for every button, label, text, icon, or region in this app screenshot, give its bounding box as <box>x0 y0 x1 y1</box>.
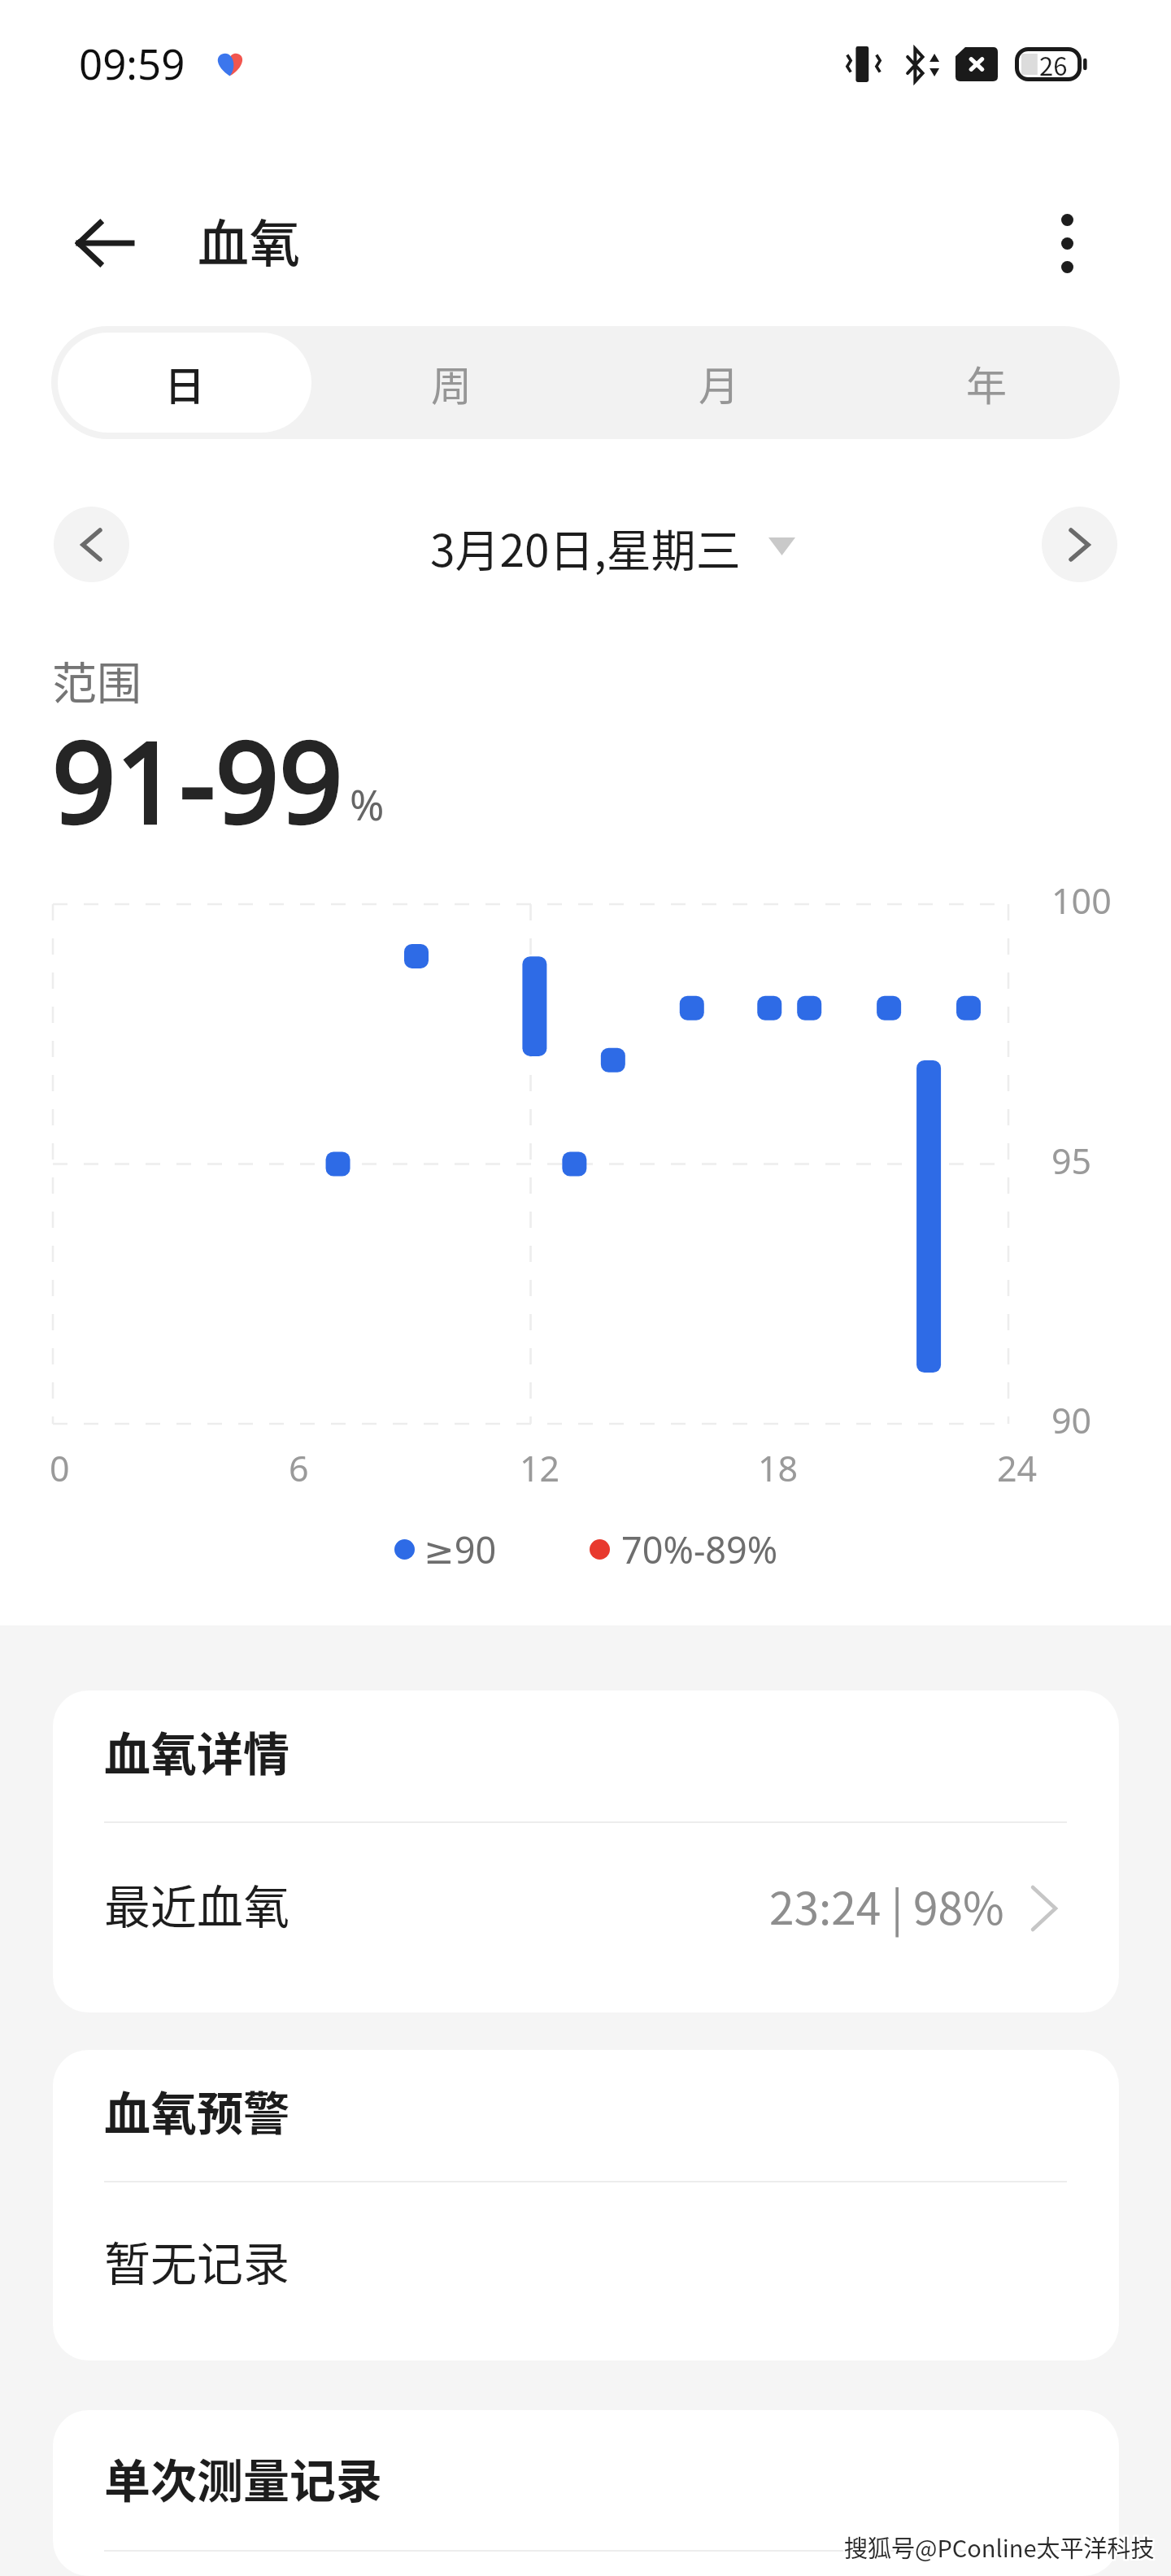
staticText: 周 <box>431 354 472 412</box>
staticText: 搜狐号@PConline太平洋科技 <box>846 2530 1156 2564</box>
button[interactable]: 最近血氧 <box>53 1825 1119 2012</box>
button[interactable]: 日 <box>58 333 311 433</box>
button[interactable]: More options <box>1016 193 1117 294</box>
staticText: 单次测量记录 <box>104 2444 382 2512</box>
button[interactable]: Previous day <box>54 507 129 582</box>
staticText: 26 <box>1039 46 1068 80</box>
staticText: ≥90 <box>424 1525 497 1574</box>
staticText: 23:24 | 98% <box>769 1873 1004 1938</box>
staticText: 24 <box>997 1444 1038 1492</box>
staticText: 18 <box>758 1444 799 1492</box>
staticText: 70%-89% <box>621 1525 778 1574</box>
button[interactable]: 月 <box>591 333 846 433</box>
staticText: 搜狐号@PConline太平洋科技 <box>842 2530 1153 2564</box>
staticText: 范围 <box>52 647 142 712</box>
staticText: 月 <box>699 354 739 412</box>
staticText: 95 <box>1051 1137 1092 1185</box>
button[interactable]: 周 <box>324 333 578 433</box>
staticText: 日 <box>164 354 205 412</box>
staticText: 09:59 <box>79 35 185 91</box>
button[interactable]: 年 <box>859 333 1113 433</box>
staticText: 100 <box>1051 877 1112 925</box>
staticText: 血氧详情 <box>104 1717 289 1785</box>
button[interactable]: Back <box>54 193 155 294</box>
staticText: 0 <box>50 1444 70 1492</box>
staticText: 搜狐号@PConline太平洋科技 <box>844 2528 1155 2562</box>
staticText: 3月20日,星期三 <box>430 515 741 580</box>
staticText: 血氧预警 <box>104 2077 289 2144</box>
staticText: % <box>350 776 385 832</box>
staticText: 搜狐号@PConline太平洋科技 <box>842 2531 1153 2565</box>
staticText: 搜狐号@PConline太平洋科技 <box>846 2531 1156 2565</box>
button[interactable]: Next day <box>1042 507 1117 582</box>
staticText: 最近血氧 <box>104 1870 289 1938</box>
staticText: 搜狐号@PConline太平洋科技 <box>846 2528 1156 2562</box>
staticText: 12 <box>520 1444 560 1492</box>
staticText: 91-99 <box>52 704 343 856</box>
staticText: 90 <box>1051 1396 1092 1444</box>
staticText: 搜狐号@PConline太平洋科技 <box>844 2531 1155 2565</box>
staticText: 年 <box>966 354 1007 412</box>
staticText: 暂无记录 <box>104 2227 289 2295</box>
staticText: 搜狐号@PConline太平洋科技 <box>844 2530 1155 2564</box>
staticText: 6 <box>289 1444 309 1492</box>
staticText: 血氧 <box>198 202 300 276</box>
staticText: 搜狐号@PConline太平洋科技 <box>842 2528 1153 2562</box>
